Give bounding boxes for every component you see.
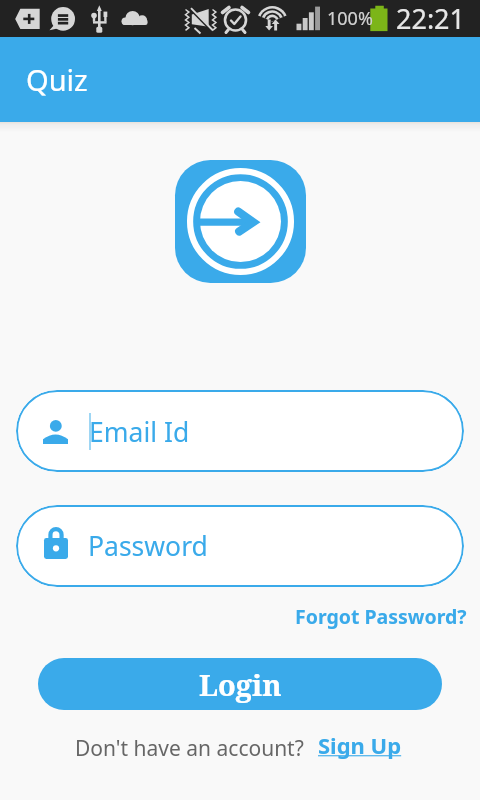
staticText: Quiz (26, 60, 88, 99)
button[interactable]: Password (16, 505, 464, 587)
staticText: Sign Up (318, 730, 402, 760)
button[interactable]: Sign Up (318, 730, 402, 760)
button[interactable]: Email Id (16, 390, 464, 472)
staticText: Forgot Password? (295, 603, 467, 630)
button[interactable]: Forgot Password? (293, 601, 469, 632)
staticText: Email Id (89, 414, 190, 450)
button[interactable]: Login (38, 658, 442, 710)
staticText: Don't have an account? (75, 734, 304, 763)
staticText: Login (199, 665, 282, 704)
staticText: 100% (327, 6, 373, 31)
staticText: 22:21 (396, 0, 466, 37)
staticText: Password (88, 528, 208, 564)
